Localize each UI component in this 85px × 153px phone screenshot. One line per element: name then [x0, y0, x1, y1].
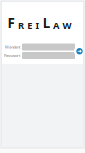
staticText: Passwort [4, 53, 20, 58]
staticText: R [18, 19, 24, 32]
staticText: Mandant [5, 44, 20, 50]
staticText: I [35, 19, 39, 32]
staticText: E [27, 19, 32, 32]
staticText: W [62, 19, 71, 32]
staticText: A [53, 19, 59, 32]
button[interactable]: Anmelden [73, 45, 85, 57]
staticText: F [8, 14, 15, 32]
staticText: L [43, 14, 50, 32]
